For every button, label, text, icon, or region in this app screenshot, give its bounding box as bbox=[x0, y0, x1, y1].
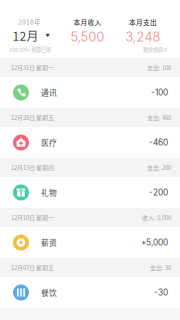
staticText: 剩余预算 0 bbox=[143, 46, 167, 53]
staticText: 收入: 5,000 bbox=[142, 213, 171, 222]
button[interactable]: 12月 bbox=[12, 27, 52, 43]
staticText: -200 bbox=[149, 187, 168, 197]
staticText: -460 bbox=[149, 137, 168, 147]
staticText: +5,000 bbox=[141, 237, 168, 247]
staticText: 12月31日 星期一 bbox=[11, 63, 54, 72]
staticText: 医疗 bbox=[41, 137, 57, 148]
staticText: 支出: 100 bbox=[147, 63, 171, 72]
staticText: -100 bbox=[151, 87, 168, 97]
button[interactable]: 餐饮 bbox=[0, 277, 180, 308]
staticText: 12月 bbox=[12, 27, 38, 44]
staticText: -30 bbox=[154, 287, 168, 297]
staticText: 支出: 200 bbox=[147, 163, 171, 172]
button[interactable]: 通讯 bbox=[0, 77, 180, 108]
staticText: 12月13日 星期四 bbox=[11, 163, 54, 172]
staticText: 支出: 30 bbox=[150, 263, 171, 272]
staticText: 本月收入 bbox=[73, 17, 101, 27]
staticText: 12月10日 星期一 bbox=[11, 213, 54, 222]
staticText: 支出: 460 bbox=[147, 113, 171, 122]
staticText: 薪资 bbox=[41, 237, 57, 248]
staticText: 通讯 bbox=[41, 87, 57, 98]
staticText: 餐饮 bbox=[41, 287, 57, 298]
button[interactable]: 礼物 bbox=[0, 177, 180, 208]
staticText: 2018年 bbox=[18, 17, 41, 26]
staticText: 12月28日 星期五 bbox=[11, 113, 54, 122]
staticText: 12月07日 星期五 bbox=[11, 263, 54, 272]
staticText: 108.33% 预算已用 bbox=[9, 46, 51, 53]
button[interactable]: 医疗 bbox=[0, 127, 180, 158]
button[interactable]: 薪资 bbox=[0, 227, 180, 258]
staticText: 礼物 bbox=[41, 187, 57, 198]
staticText: 5,500 bbox=[70, 29, 104, 45]
staticText: 本月支出 bbox=[129, 17, 157, 27]
staticText: 3,248 bbox=[125, 29, 160, 45]
